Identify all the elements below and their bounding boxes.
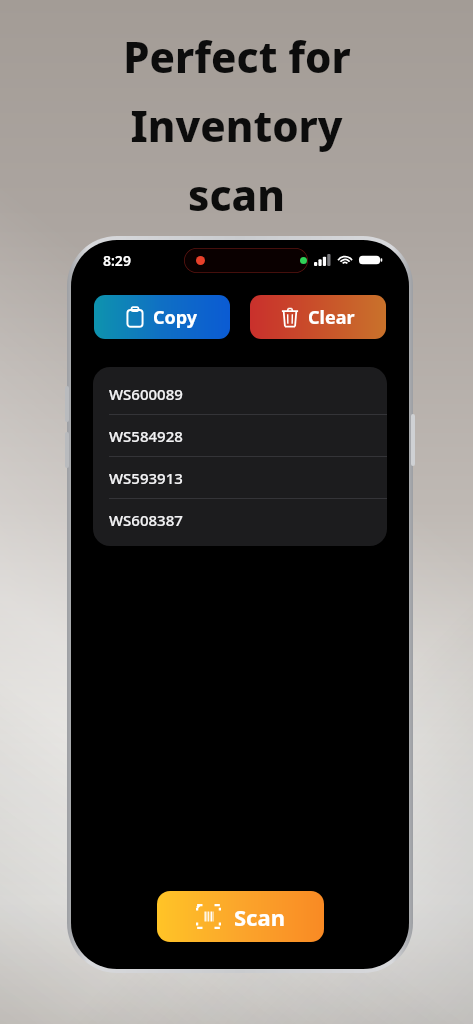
staticText: Clear xyxy=(308,305,355,330)
staticText: Perfect for xyxy=(123,28,351,85)
staticText: WS600089 xyxy=(109,384,183,404)
staticText: Scan xyxy=(234,902,285,932)
button[interactable]: WS600089 xyxy=(93,373,387,414)
button[interactable]: WS593913 xyxy=(93,457,387,498)
button[interactable]: Scan barcode xyxy=(157,891,324,942)
button[interactable]: WS608387 xyxy=(93,499,387,540)
staticText: WS608387 xyxy=(109,510,183,530)
staticText: scan xyxy=(188,166,285,223)
staticText: Inventory xyxy=(130,97,343,154)
other: Scan barcode xyxy=(196,904,221,929)
button[interactable]: Copy xyxy=(94,295,230,339)
staticText: Copy xyxy=(153,305,198,330)
button[interactable]: Clear xyxy=(250,295,386,339)
staticText: WS584928 xyxy=(109,426,183,446)
staticText: WS593913 xyxy=(109,468,183,488)
button[interactable]: WS584928 xyxy=(93,415,387,456)
staticText: 8:29 xyxy=(103,251,131,270)
